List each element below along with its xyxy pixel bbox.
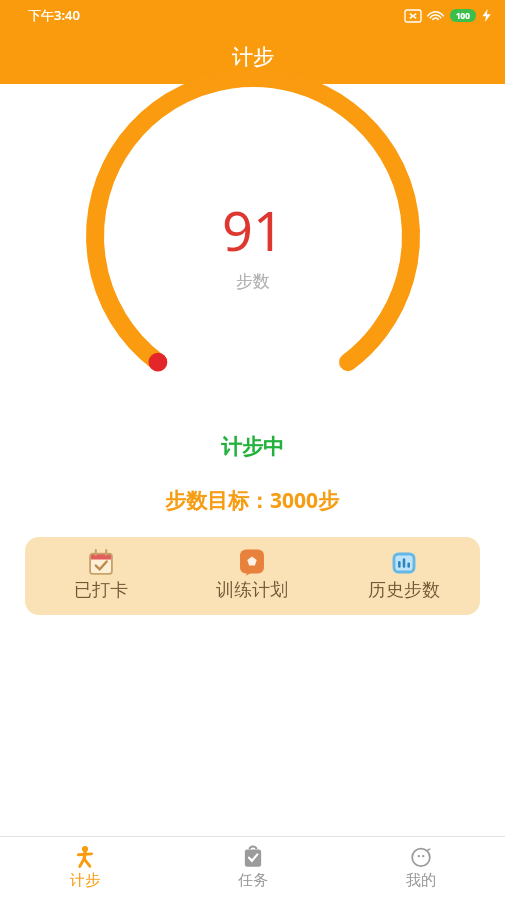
button[interactable]: 训练计划 xyxy=(176,542,328,610)
staticText: 任务 xyxy=(238,871,268,890)
staticText: 91 xyxy=(222,193,284,267)
staticText: 计步 xyxy=(70,871,100,890)
staticText: 步数 xyxy=(236,271,270,292)
staticText: 训练计划 xyxy=(216,579,288,602)
button[interactable]: 我的 xyxy=(337,840,505,896)
staticText: 步数目标：3000步 xyxy=(165,486,340,515)
button[interactable]: 计步 xyxy=(0,840,169,896)
staticText: 下午3:40 xyxy=(28,6,80,24)
button[interactable]: 任务 xyxy=(169,840,337,896)
staticText: 我的 xyxy=(406,871,436,890)
staticText: 100 xyxy=(456,10,470,21)
staticText: 计步 xyxy=(232,44,274,70)
button[interactable]: 历史步数 xyxy=(328,542,480,610)
staticText: 计步中 xyxy=(221,434,284,460)
button[interactable]: 已打卡 xyxy=(25,542,176,610)
staticText: 已打卡 xyxy=(74,579,128,602)
staticText: 历史步数 xyxy=(368,579,440,602)
